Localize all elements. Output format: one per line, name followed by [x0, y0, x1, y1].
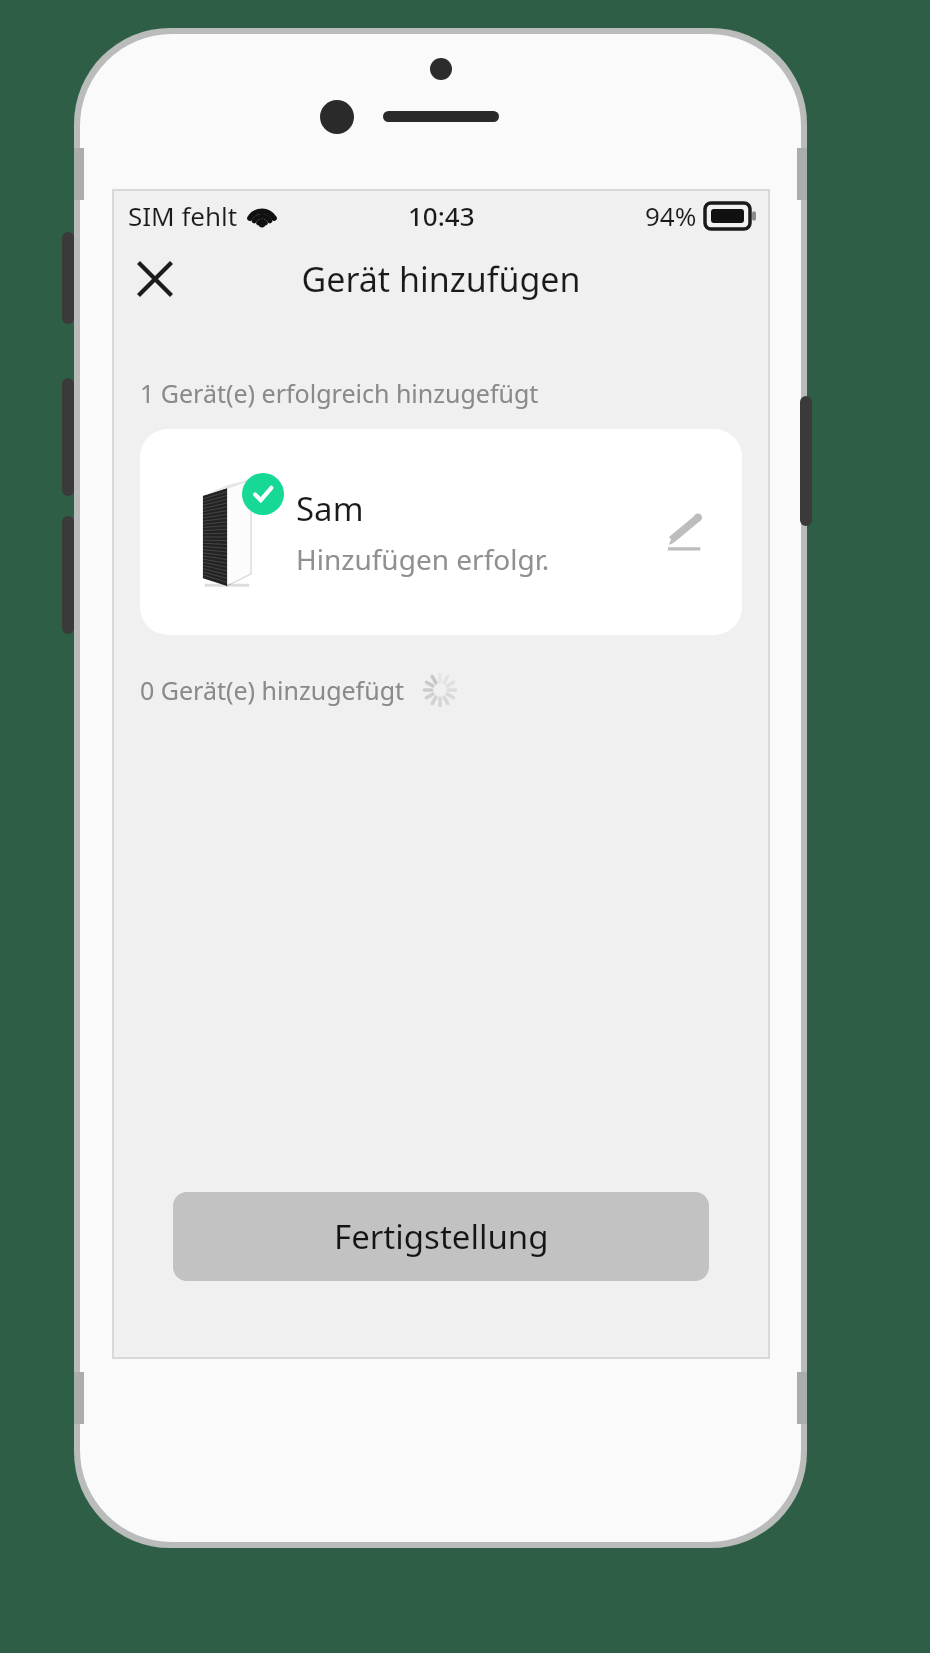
staticText: 10:43: [408, 198, 475, 233]
button[interactable]: Fertigstellung: [173, 1192, 709, 1281]
button[interactable]: Sam: [140, 429, 742, 635]
staticText: 0 Gerät(e) hinzugefügt: [140, 673, 405, 707]
button[interactable]: Schließen: [127, 251, 183, 307]
staticText: Gerät hinzufügen: [301, 256, 581, 302]
staticText: SIM fehlt: [128, 198, 238, 233]
staticText: 94%: [645, 198, 697, 233]
staticText: Hinzufügen erfolgr.: [296, 540, 550, 578]
staticText: Fertigstellung: [334, 1214, 549, 1259]
staticText: Sam: [296, 486, 364, 531]
staticText: 1 Gerät(e) erfolgreich hinzugefügt: [140, 376, 539, 410]
button[interactable]: Umbenennen: [650, 497, 720, 567]
